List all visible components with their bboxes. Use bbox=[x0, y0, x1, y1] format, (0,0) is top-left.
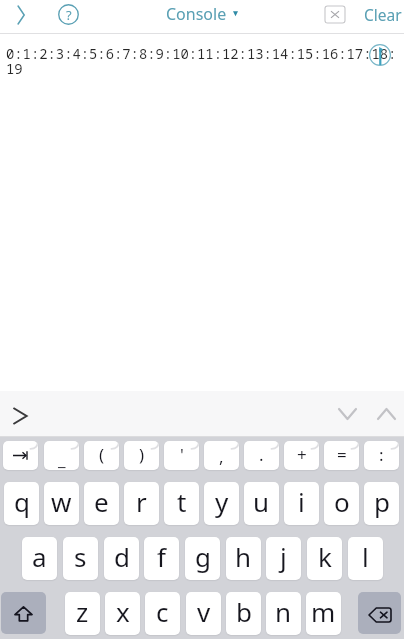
button[interactable]: ( bbox=[84, 441, 119, 470]
button[interactable]: a bbox=[22, 537, 57, 580]
staticText: i bbox=[298, 484, 305, 519]
button[interactable]: u bbox=[244, 482, 279, 525]
staticText: d bbox=[114, 539, 130, 574]
button[interactable]: t bbox=[164, 482, 199, 525]
staticText: x bbox=[116, 594, 130, 629]
staticText: p bbox=[374, 484, 390, 519]
button[interactable]: : bbox=[364, 441, 399, 470]
staticText: z bbox=[76, 594, 89, 629]
button[interactable]: . bbox=[244, 441, 279, 470]
button[interactable]: b bbox=[226, 592, 261, 635]
staticText: , bbox=[219, 445, 224, 468]
button[interactable]: k bbox=[307, 537, 342, 580]
button[interactable]: r bbox=[124, 482, 159, 525]
button[interactable]: = bbox=[324, 441, 359, 470]
button[interactable] bbox=[3, 441, 38, 470]
button[interactable]: , bbox=[204, 441, 239, 470]
button[interactable]: d bbox=[104, 537, 139, 580]
staticText: c bbox=[156, 594, 169, 629]
staticText: k bbox=[318, 539, 332, 574]
staticText: + bbox=[297, 443, 307, 466]
staticText: : bbox=[379, 443, 384, 466]
staticText: r bbox=[136, 484, 147, 519]
button[interactable]: o bbox=[324, 482, 359, 525]
staticText: ' bbox=[180, 443, 184, 466]
staticText: v bbox=[197, 594, 211, 629]
staticText: o bbox=[334, 484, 350, 519]
staticText: 0:1:2:3:4:5:6:7:8:9:10:11:12:13:14:15:16… bbox=[6, 44, 397, 78]
button[interactable]: n bbox=[266, 592, 301, 635]
staticText: Console bbox=[166, 3, 227, 25]
staticText: m bbox=[311, 594, 336, 629]
button[interactable]: e bbox=[84, 482, 119, 525]
staticText: e bbox=[94, 484, 109, 519]
staticText: w bbox=[51, 484, 72, 519]
button[interactable]: z bbox=[65, 592, 100, 635]
button[interactable]: f bbox=[144, 537, 179, 580]
staticText: = bbox=[337, 443, 347, 466]
button[interactable]: h bbox=[226, 537, 261, 580]
button[interactable]: j bbox=[266, 537, 301, 580]
button[interactable]: g bbox=[185, 537, 220, 580]
button[interactable]: Clear bbox=[350, 0, 404, 29]
staticText: j bbox=[280, 539, 287, 574]
staticText: y bbox=[215, 484, 229, 519]
button[interactable]: Scroll down bbox=[330, 391, 364, 437]
button[interactable]: Help bbox=[52, 0, 85, 29]
button[interactable]: i bbox=[284, 482, 319, 525]
button[interactable]: q bbox=[4, 482, 39, 525]
button[interactable]: Close console bbox=[318, 0, 352, 29]
staticText: . bbox=[259, 443, 264, 466]
button[interactable]: Shift bbox=[1, 592, 46, 634]
button[interactable]: p bbox=[364, 482, 399, 525]
staticText: ? bbox=[66, 6, 72, 24]
button[interactable]: x bbox=[105, 592, 140, 635]
staticText: t bbox=[177, 484, 187, 519]
button[interactable]: c bbox=[145, 592, 180, 635]
button[interactable]: s bbox=[63, 537, 98, 580]
staticText: ( bbox=[99, 443, 105, 466]
staticText: b bbox=[236, 594, 252, 629]
button[interactable]: _ bbox=[44, 441, 79, 470]
staticText: s bbox=[74, 539, 87, 574]
staticText: Clear bbox=[364, 4, 402, 25]
button[interactable]: Backspace bbox=[358, 592, 401, 634]
staticText: g bbox=[195, 539, 211, 574]
staticText: n bbox=[275, 594, 292, 629]
staticText: _ bbox=[58, 448, 66, 470]
button[interactable]: Console bbox=[166, 0, 238, 28]
button[interactable]: ' bbox=[164, 441, 199, 470]
staticText: l bbox=[362, 539, 369, 574]
button[interactable]: + bbox=[284, 441, 319, 470]
staticText: h bbox=[235, 539, 252, 574]
button[interactable]: Run bbox=[3, 0, 39, 29]
staticText: q bbox=[14, 484, 30, 519]
staticText: f bbox=[157, 539, 166, 574]
button[interactable]: ) bbox=[124, 441, 159, 470]
button[interactable]: v bbox=[186, 592, 221, 635]
staticText: ) bbox=[139, 443, 145, 466]
button[interactable]: Prompt bbox=[0, 393, 40, 439]
button[interactable]: w bbox=[44, 482, 79, 525]
staticText: a bbox=[32, 539, 47, 574]
staticText: u bbox=[253, 484, 270, 519]
button[interactable]: l bbox=[348, 537, 383, 580]
button[interactable]: y bbox=[204, 482, 239, 525]
button[interactable]: m bbox=[306, 592, 341, 635]
button[interactable]: Scroll up bbox=[369, 391, 403, 437]
